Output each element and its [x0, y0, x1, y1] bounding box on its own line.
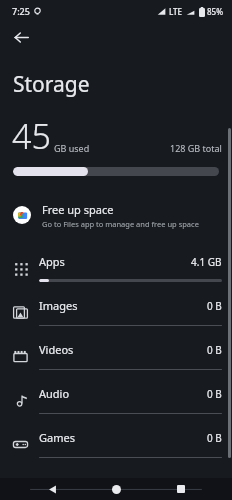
- button[interactable]: Documents: [0, 466, 232, 500]
- staticText: Free up space: [42, 202, 114, 217]
- staticText: 0 B: [207, 387, 222, 401]
- staticText: Images: [39, 298, 78, 313]
- staticText: 4.1 GB: [191, 255, 222, 269]
- staticText: 0 B: [207, 431, 222, 445]
- staticText: 0 B: [207, 475, 222, 489]
- staticText: 45: [12, 113, 51, 159]
- staticText: LTE: [169, 6, 183, 17]
- staticText: 128 GB total: [170, 142, 222, 154]
- staticText: 85%: [207, 6, 223, 17]
- button[interactable]: Back: [39, 478, 65, 500]
- button[interactable]: Images: [0, 290, 232, 334]
- button[interactable]: Audio: [0, 378, 232, 422]
- staticText: Games: [39, 430, 75, 445]
- staticText: Apps: [39, 254, 65, 269]
- staticText: 0 B: [207, 299, 222, 313]
- staticText: 0 B: [207, 343, 222, 357]
- staticText: Go to Files app to manage and free up sp…: [42, 219, 199, 229]
- button[interactable]: Videos: [0, 334, 232, 378]
- staticText: Videos: [39, 342, 74, 357]
- staticText: Audio: [39, 386, 70, 401]
- button[interactable]: Recent apps: [168, 478, 194, 500]
- button[interactable]: Free up space: [0, 194, 232, 236]
- staticText: Documents: [39, 474, 99, 489]
- staticText: Storage: [13, 70, 90, 99]
- button[interactable]: Apps: [0, 246, 232, 290]
- button[interactable]: Home: [103, 478, 129, 500]
- button[interactable]: Back: [7, 23, 35, 51]
- staticText: 7:25: [12, 5, 30, 17]
- staticText: GB used: [54, 142, 90, 154]
- button[interactable]: Games: [0, 422, 232, 466]
